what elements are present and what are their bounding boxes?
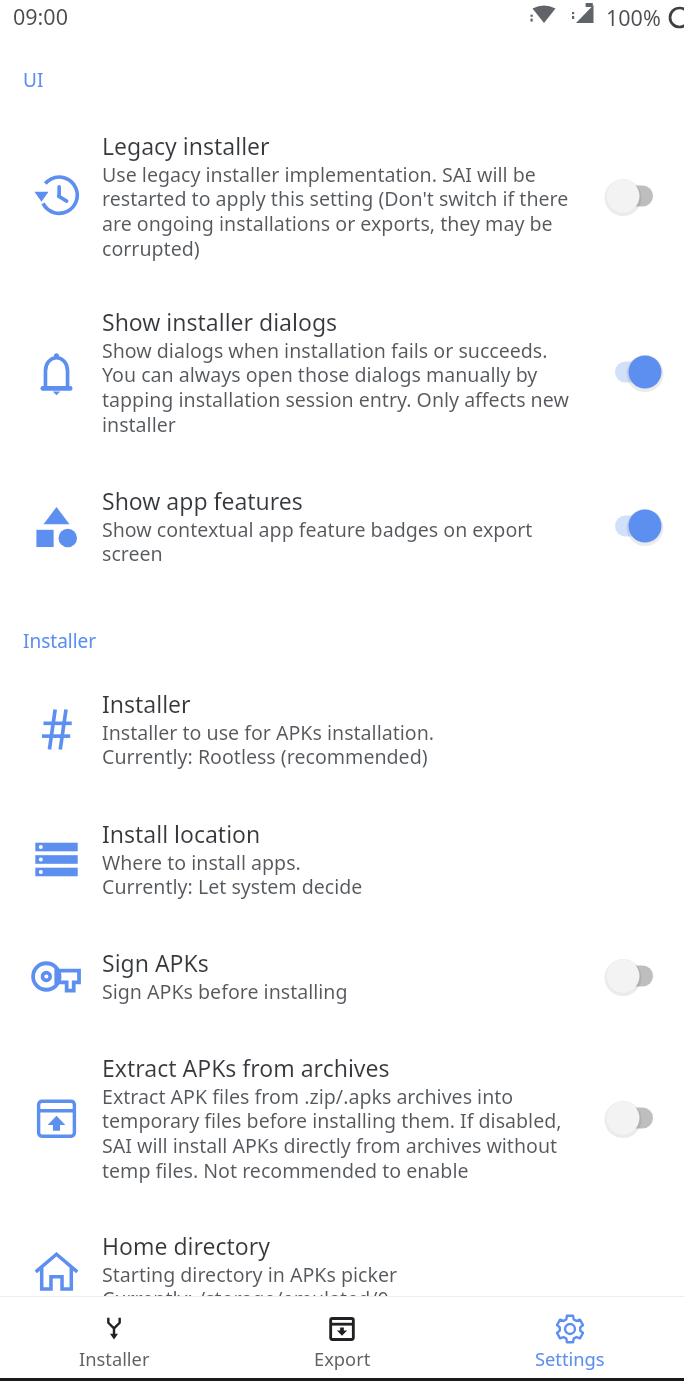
staticText: Show app features <box>102 485 303 516</box>
button[interactable]: Show app features <box>0 485 684 567</box>
button[interactable]: Extract APKs from archives <box>0 1052 684 1184</box>
staticText: Installer <box>79 1346 150 1371</box>
button[interactable]: Settings <box>456 1297 684 1378</box>
button[interactable]: Toggle off <box>597 1095 671 1141</box>
staticText: Home directory <box>102 1230 270 1261</box>
button[interactable]: Toggle on <box>597 349 671 395</box>
button[interactable]: Toggle off <box>597 173 671 219</box>
staticText: Installer <box>23 628 97 654</box>
staticText: 100% <box>606 3 661 32</box>
staticText: Legacy installer <box>102 130 270 161</box>
button[interactable]: Installer <box>0 688 684 770</box>
staticText: Extract APK files from .zip/.apks archiv… <box>102 1083 574 1184</box>
button[interactable]: Export <box>228 1297 456 1378</box>
staticText: Show dialogs when installation fails or … <box>102 337 574 438</box>
button[interactable]: Legacy installer <box>0 130 684 262</box>
staticText: Starting directory in APKs picker Curren… <box>102 1261 398 1312</box>
staticText: 09:00 <box>13 2 68 31</box>
button[interactable]: Install location <box>0 818 684 900</box>
staticText: Sign APKs before installing <box>102 978 348 1005</box>
staticText: Installer to use for APKs installation. … <box>102 719 435 770</box>
staticText: Extract APKs from archives <box>102 1052 390 1083</box>
staticText: UI <box>23 67 44 93</box>
button[interactable]: Toggle off <box>597 953 671 999</box>
button[interactable]: Installer <box>0 1297 228 1378</box>
staticText: Sign APKs <box>102 947 209 978</box>
staticText: Export <box>314 1346 371 1371</box>
staticText: Where to install apps. Currently: Let sy… <box>102 849 363 900</box>
staticText: Use legacy installer implementation. SAI… <box>102 161 574 262</box>
button[interactable]: Home directory <box>0 1230 684 1312</box>
button[interactable]: Toggle on <box>597 503 671 549</box>
staticText: Show installer dialogs <box>102 306 338 337</box>
staticText: Install location <box>102 818 261 849</box>
button[interactable]: Show installer dialogs <box>0 306 684 438</box>
staticText: Installer <box>102 688 191 719</box>
staticText: Settings <box>535 1346 605 1371</box>
staticText: Show contextual app feature badges on ex… <box>102 516 574 567</box>
button[interactable]: Sign APKs <box>0 947 684 1005</box>
